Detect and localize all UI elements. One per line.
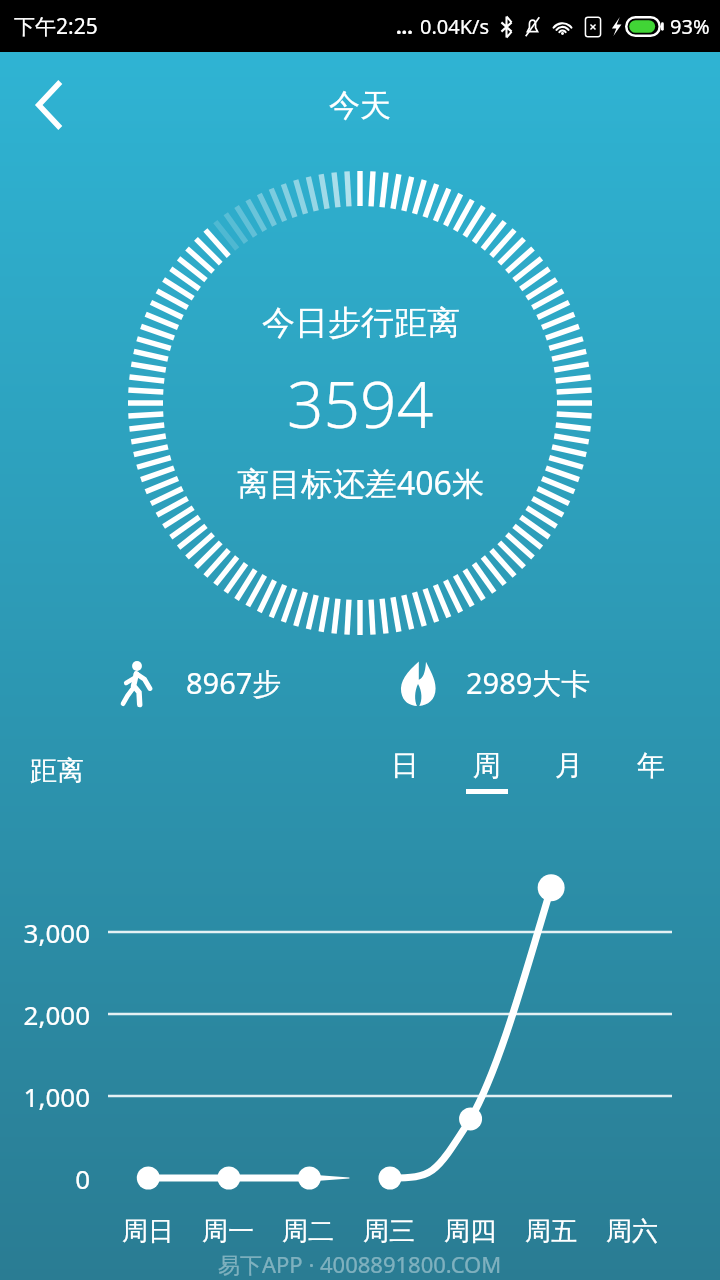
staticText: 3594 xyxy=(287,360,434,447)
button[interactable]: Back xyxy=(16,72,82,138)
staticText: 0.04K/s xyxy=(420,13,490,40)
staticText: 周四 xyxy=(444,1215,496,1248)
staticText: 3,000 xyxy=(23,915,90,950)
staticText: 周一 xyxy=(202,1215,254,1248)
staticText: 周日 xyxy=(122,1215,174,1248)
staticText: 周 xyxy=(473,748,501,783)
staticText: 离目标还差406米 xyxy=(237,461,484,505)
staticText: 0 xyxy=(75,1161,90,1196)
button[interactable]: 距离 xyxy=(30,754,84,788)
staticText: 易下APP · 4008891800.COM xyxy=(218,1249,502,1279)
staticText: 年 xyxy=(637,748,665,783)
staticText: 周六 xyxy=(606,1215,658,1248)
staticText: 月 xyxy=(555,748,583,783)
staticText: 周三 xyxy=(363,1215,415,1248)
staticText: 2989大卡 xyxy=(466,663,591,703)
staticText: 周二 xyxy=(282,1215,334,1248)
staticText: 周五 xyxy=(525,1215,577,1248)
staticText: 今天 xyxy=(329,86,391,125)
staticText: 下午2:25 xyxy=(14,12,98,41)
staticText: 8967步 xyxy=(186,663,282,703)
staticText: 日 xyxy=(391,748,419,783)
staticText: 93% xyxy=(670,13,710,40)
staticText: 2,000 xyxy=(23,997,90,1032)
button[interactable]: 周 xyxy=(464,748,510,794)
staticText: 1,000 xyxy=(23,1079,90,1114)
button[interactable]: 8967步 xyxy=(120,660,360,706)
staticText: 今日步行距离 xyxy=(262,302,460,344)
button[interactable]: 年 xyxy=(628,748,674,794)
button[interactable]: 日 xyxy=(382,748,428,794)
button[interactable]: 2989大卡 xyxy=(398,660,720,706)
button[interactable]: 月 xyxy=(546,748,592,794)
staticText: ... xyxy=(396,13,413,40)
